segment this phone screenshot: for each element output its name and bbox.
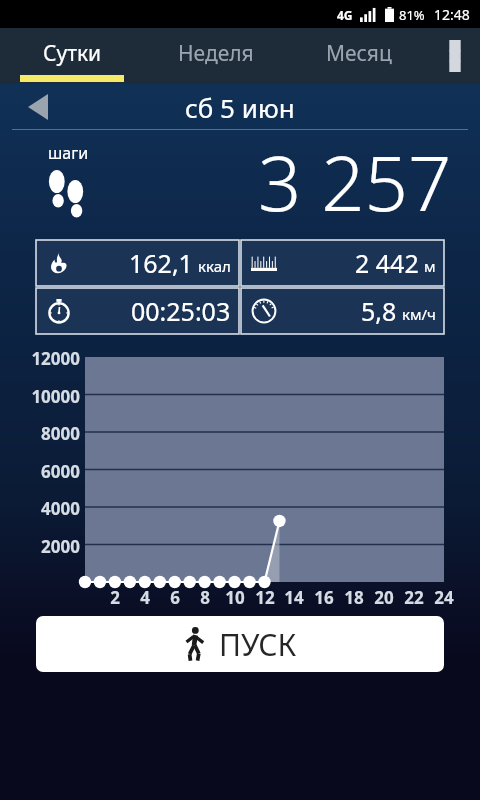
staticText: 2 442: [355, 246, 419, 280]
staticText: 5,8: [361, 294, 397, 328]
staticText: ккал: [198, 256, 231, 276]
staticText: 16: [308, 586, 340, 609]
staticText: 14: [278, 586, 310, 609]
staticText: 20: [368, 586, 400, 609]
staticText: 6000: [22, 460, 80, 483]
staticText: 12000: [22, 347, 80, 370]
button[interactable]: ПУСК: [36, 616, 444, 672]
staticText: шаги: [48, 142, 89, 164]
button[interactable]: More options: [430, 28, 480, 84]
button[interactable]: 162,1: [36, 240, 239, 286]
staticText: км/ч: [402, 304, 436, 324]
staticText: Неделя: [178, 39, 254, 68]
staticText: 4: [129, 586, 161, 609]
staticText: Сутки: [43, 39, 102, 68]
staticText: 22: [398, 586, 430, 609]
button[interactable]: Сутки: [0, 28, 144, 84]
staticText: 10: [219, 586, 251, 609]
staticText: 24: [428, 586, 460, 609]
button[interactable]: Previous day: [16, 85, 60, 129]
staticText: 3 257: [258, 130, 452, 234]
staticText: 162,1: [129, 246, 193, 280]
staticText: 6: [159, 586, 191, 609]
button[interactable]: 5,8: [241, 288, 444, 334]
staticText: 12:48: [434, 5, 470, 24]
staticText: 8: [189, 586, 221, 609]
staticText: 81%: [399, 6, 425, 24]
staticText: 2: [99, 586, 131, 609]
button[interactable]: Неделя: [144, 28, 287, 84]
button[interactable]: 2 442: [241, 240, 444, 286]
staticText: 12: [249, 586, 281, 609]
staticText: 00:25:03: [131, 294, 231, 328]
staticText: 8000: [22, 422, 80, 445]
staticText: 4000: [22, 497, 80, 520]
staticText: Месяц: [326, 39, 392, 68]
staticText: 10000: [22, 385, 80, 408]
button[interactable]: Месяц: [287, 28, 430, 84]
staticText: 18: [338, 586, 370, 609]
staticText: м: [424, 256, 436, 276]
staticText: ПУСК: [219, 624, 297, 665]
staticText: 4G: [337, 7, 353, 23]
staticText: 2000: [22, 535, 80, 558]
button[interactable]: 00:25:03: [36, 288, 239, 334]
staticText: сб 5 июн: [185, 90, 295, 125]
